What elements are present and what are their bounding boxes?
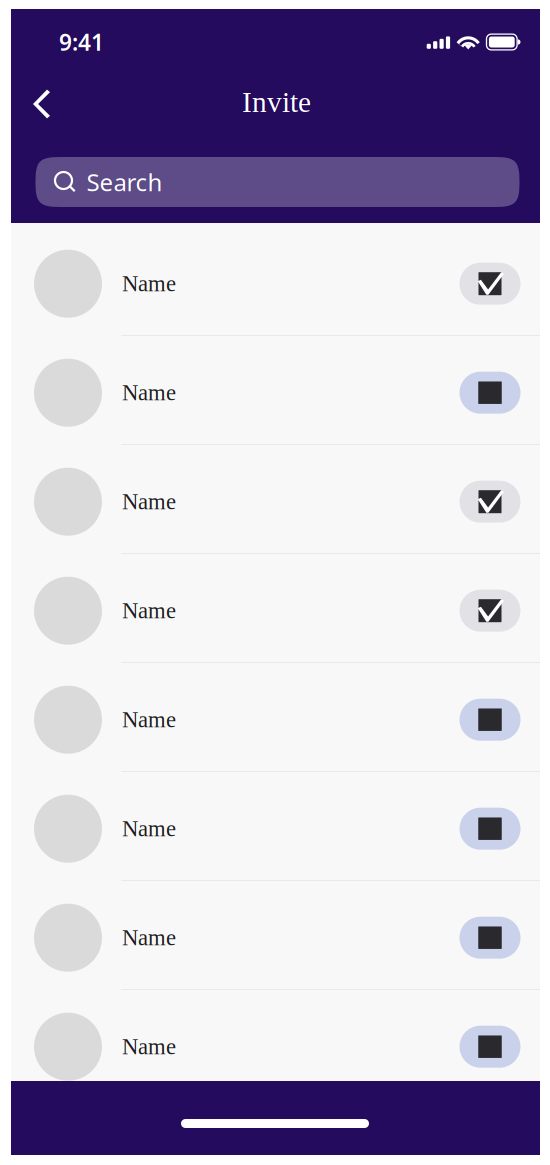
button[interactable]: Name	[11, 1013, 540, 1081]
staticText: Name	[122, 489, 176, 514]
staticText: Name	[122, 816, 176, 841]
button[interactable]: Back	[17, 79, 65, 129]
staticText: 9:41	[59, 27, 104, 57]
button[interactable]: Name	[11, 468, 540, 536]
button[interactable]: Name	[11, 577, 540, 645]
staticText: Name	[122, 707, 176, 732]
staticText: Name	[122, 925, 176, 950]
button[interactable]: Name	[11, 686, 540, 754]
button[interactable]: Name	[11, 904, 540, 972]
staticText: Name	[122, 380, 176, 405]
button[interactable]: Search	[35, 157, 519, 207]
button[interactable]: Name	[11, 795, 540, 863]
button[interactable]: Name	[11, 359, 540, 427]
staticText: Search	[86, 166, 162, 198]
staticText: Name	[122, 1034, 176, 1059]
staticText: Invite	[242, 86, 311, 118]
staticText: Name	[122, 598, 176, 623]
button[interactable]: Name	[11, 250, 540, 318]
staticText: Name	[122, 271, 176, 296]
